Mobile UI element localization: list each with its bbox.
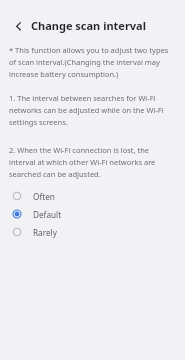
button[interactable]: Default <box>0 205 185 223</box>
button[interactable]: Often <box>0 187 185 205</box>
staticText: 1. The interval between searches for Wi-… <box>9 91 177 127</box>
staticText: Often <box>33 191 55 202</box>
staticText: * This function allows you to adjust two… <box>9 43 177 79</box>
staticText: Default <box>33 209 62 220</box>
button[interactable]: Rarely <box>0 223 185 241</box>
staticText: 2. When the Wi-Fi connection is lost, th… <box>9 143 177 179</box>
button[interactable]: Back <box>6 15 27 36</box>
staticText: Rarely <box>33 227 57 238</box>
staticText: Change scan interval <box>31 18 146 33</box>
